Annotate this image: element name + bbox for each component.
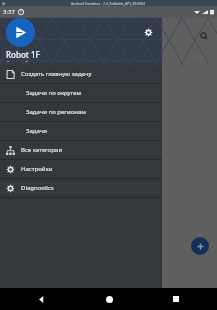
button[interactable]: Diagnostics [0,179,162,197]
staticText: 3:37 [3,8,15,16]
button[interactable]: Back [34,292,48,306]
staticText: Диалог-Регионы [6,60,46,62]
staticText: Android Emulator - 7.3_Foldable_API_30:5… [71,1,146,6]
button[interactable]: Задачи по регионам [0,103,162,121]
staticText: Robot 1F [6,49,40,60]
staticText: 14:29 [192,54,204,60]
staticText: Настройки [21,165,53,173]
button[interactable]: Создать главную задачу [0,65,162,83]
button[interactable]: Add [191,237,209,255]
staticText: Diagnostics [21,184,54,192]
button[interactable]: Search [196,28,212,44]
button[interactable]: Задачи [0,122,162,140]
button[interactable]: Settings [140,24,156,40]
button[interactable]: Задачи по округам [0,84,162,102]
staticText: Задачи [26,127,48,135]
button[interactable]: Home [102,292,116,306]
staticText: Задачи по регионам [26,108,86,116]
button[interactable]: Recents [169,292,183,306]
staticText: Задачи по округам [26,89,82,97]
button[interactable]: Настройки [0,160,162,178]
staticText: Все категории [21,146,63,154]
staticText: Создать главную задачу [21,70,92,78]
button[interactable]: Все категории [0,141,162,159]
